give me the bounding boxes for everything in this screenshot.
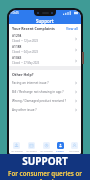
staticText: My Schedule bbox=[40, 150, 53, 153]
staticText: SUPPORT bbox=[22, 154, 68, 168]
staticText: My Internet bbox=[11, 150, 23, 153]
staticText: Wrong / Damaged product received ? bbox=[12, 99, 74, 103]
button[interactable]: #1188 bbox=[9, 44, 81, 55]
button[interactable]: Facing an internet issue ? bbox=[9, 78, 81, 87]
staticText: Closed • 27 May 2023 bbox=[12, 61, 40, 65]
staticText: #1294 bbox=[12, 34, 22, 38]
staticText: Other Help? bbox=[12, 72, 34, 77]
button[interactable]: My Orders bbox=[24, 141, 39, 154]
staticText: Your Recent Complaints bbox=[12, 26, 55, 31]
button[interactable]: My Profile bbox=[67, 141, 81, 154]
staticText: My Profile bbox=[69, 150, 79, 153]
staticText: Closed • 12 Jun 2023 bbox=[12, 39, 39, 43]
button[interactable]: #1294 bbox=[9, 33, 81, 44]
staticText: Bill / Recharge not showing in app ? bbox=[12, 90, 74, 94]
button[interactable]: My Internet bbox=[9, 141, 24, 154]
staticText: Any other issue ? bbox=[12, 108, 74, 112]
staticText: View all bbox=[66, 27, 78, 31]
staticText: My Orders bbox=[26, 150, 37, 153]
button[interactable]: Wrong / Damaged product received ? bbox=[9, 96, 81, 105]
button[interactable]: Bill / Recharge not showing in app ? bbox=[9, 87, 81, 96]
staticText: #1188 bbox=[12, 45, 22, 49]
button[interactable]: Support bbox=[53, 141, 67, 154]
staticText: Support bbox=[56, 150, 64, 153]
staticText: Closed • 04 Jun 2023 bbox=[12, 50, 39, 54]
staticText: Support bbox=[36, 18, 54, 24]
button[interactable]: My Schedule bbox=[39, 141, 53, 154]
button[interactable]: #1043 bbox=[9, 55, 81, 66]
staticText: For consumer queries or refunds bbox=[0, 169, 90, 180]
staticText: #1043 bbox=[12, 56, 22, 60]
button[interactable]: Any other issue ? bbox=[9, 105, 81, 114]
button[interactable]: View all bbox=[66, 27, 78, 31]
staticText: Facing an internet issue ? bbox=[12, 81, 74, 85]
staticText: 10:45 bbox=[11, 11, 19, 15]
